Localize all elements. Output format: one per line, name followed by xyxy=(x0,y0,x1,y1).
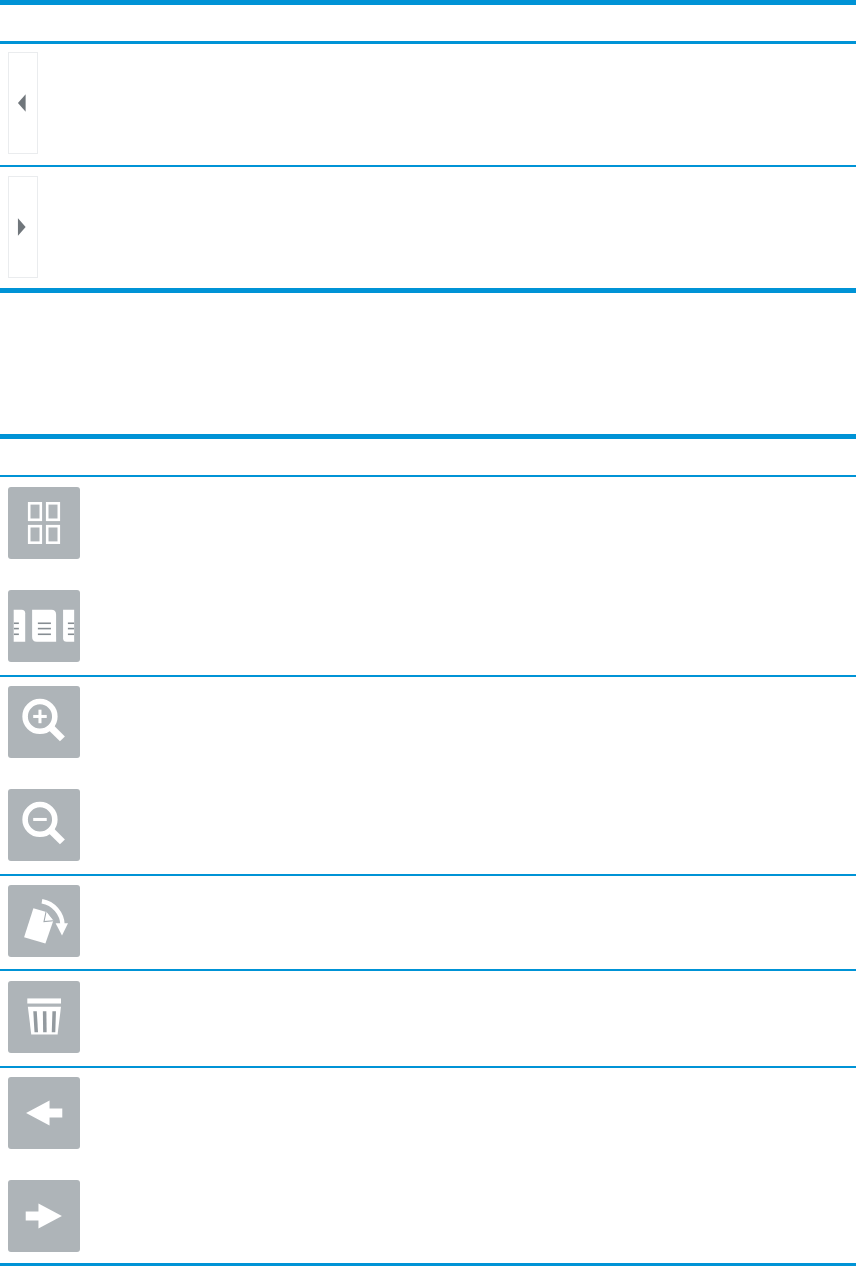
button[interactable]: Previous page xyxy=(8,52,38,154)
button[interactable]: Move page left xyxy=(8,1077,80,1149)
button[interactable]: Delete page xyxy=(8,981,80,1053)
button[interactable]: Rotate page xyxy=(8,885,80,957)
button[interactable]: Zoom in xyxy=(8,686,80,758)
button[interactable]: Grid view xyxy=(8,487,80,559)
button[interactable]: Next page xyxy=(8,176,38,278)
button[interactable]: Move page right xyxy=(8,1180,80,1252)
button[interactable]: Zoom out xyxy=(8,789,80,861)
button[interactable]: Page view xyxy=(8,590,80,662)
